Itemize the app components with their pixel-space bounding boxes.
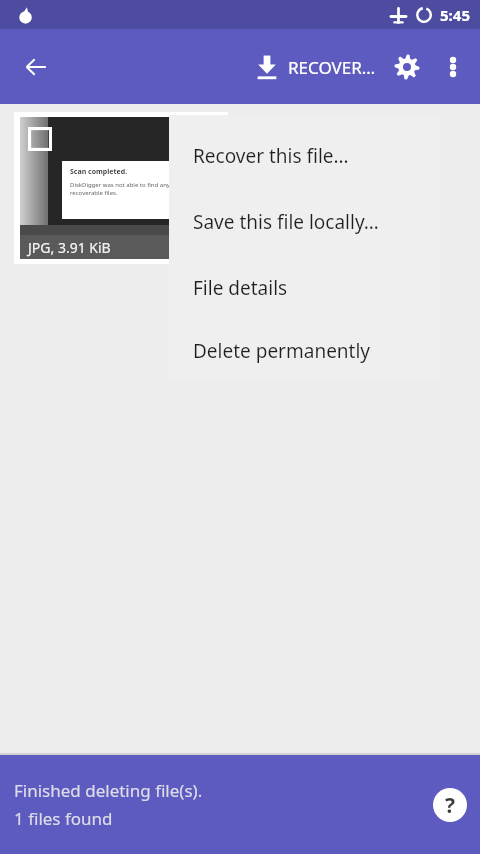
staticText: Recover this file… <box>193 143 349 169</box>
staticText: 5:45 <box>440 5 470 25</box>
button[interactable]: File details <box>169 255 440 321</box>
staticText: ? <box>445 791 456 820</box>
staticText: Delete permanently <box>193 338 371 364</box>
staticText: DiskDigger was not able to find any reco… <box>70 181 170 197</box>
staticText: JPG, 3.91 KiB <box>28 238 111 257</box>
staticText: Save this file locally… <box>193 209 379 235</box>
staticText: File details <box>193 275 288 301</box>
button[interactable]: Delete permanently <box>169 321 440 380</box>
button[interactable]: More options <box>430 44 476 90</box>
staticText: Finished deleting file(s). <box>14 779 203 802</box>
staticText: Scan completed. <box>70 167 128 177</box>
button[interactable]: Help <box>433 788 467 822</box>
staticText: 1 files found <box>14 807 113 830</box>
button[interactable]: Save this file locally… <box>169 189 440 255</box>
button[interactable]: Recover this file… <box>169 123 440 189</box>
button[interactable]: Settings <box>384 44 430 90</box>
button[interactable]: Scan completed. <box>14 112 228 264</box>
button[interactable]: RECOVER… <box>246 44 384 90</box>
staticText: RECOVER… <box>288 56 376 79</box>
staticText: OK <box>193 208 202 216</box>
button[interactable]: Back <box>12 43 60 91</box>
